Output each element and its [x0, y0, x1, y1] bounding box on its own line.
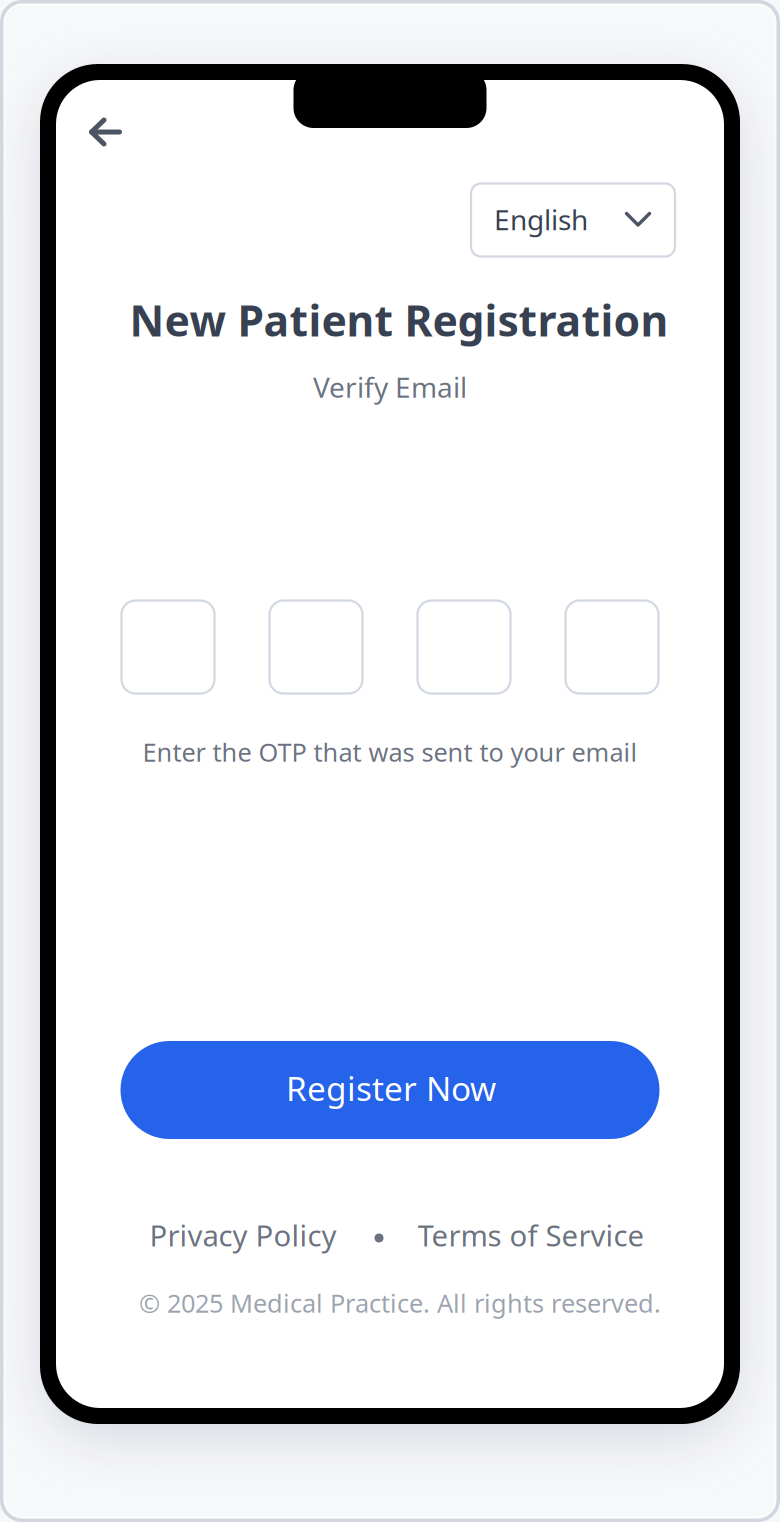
button[interactable]: English [471, 183, 675, 256]
button[interactable]: Register Now [120, 1041, 659, 1139]
staticText: English [494, 201, 588, 238]
staticText: Enter the OTP that was sent to your emai… [142, 735, 637, 769]
staticText: Register Now [286, 1066, 496, 1110]
button[interactable]: Back [67, 97, 143, 167]
staticText: New Patient Registration [129, 292, 668, 348]
staticText: Terms of Service [417, 1215, 644, 1254]
button[interactable]: Privacy Policy [149, 1215, 336, 1254]
staticText: Verify Email [313, 368, 467, 406]
staticText: Privacy Policy [149, 1215, 336, 1254]
staticText: © 2025 Medical Practice. All rights rese… [139, 1286, 661, 1320]
button[interactable]: Terms of Service [417, 1215, 644, 1254]
